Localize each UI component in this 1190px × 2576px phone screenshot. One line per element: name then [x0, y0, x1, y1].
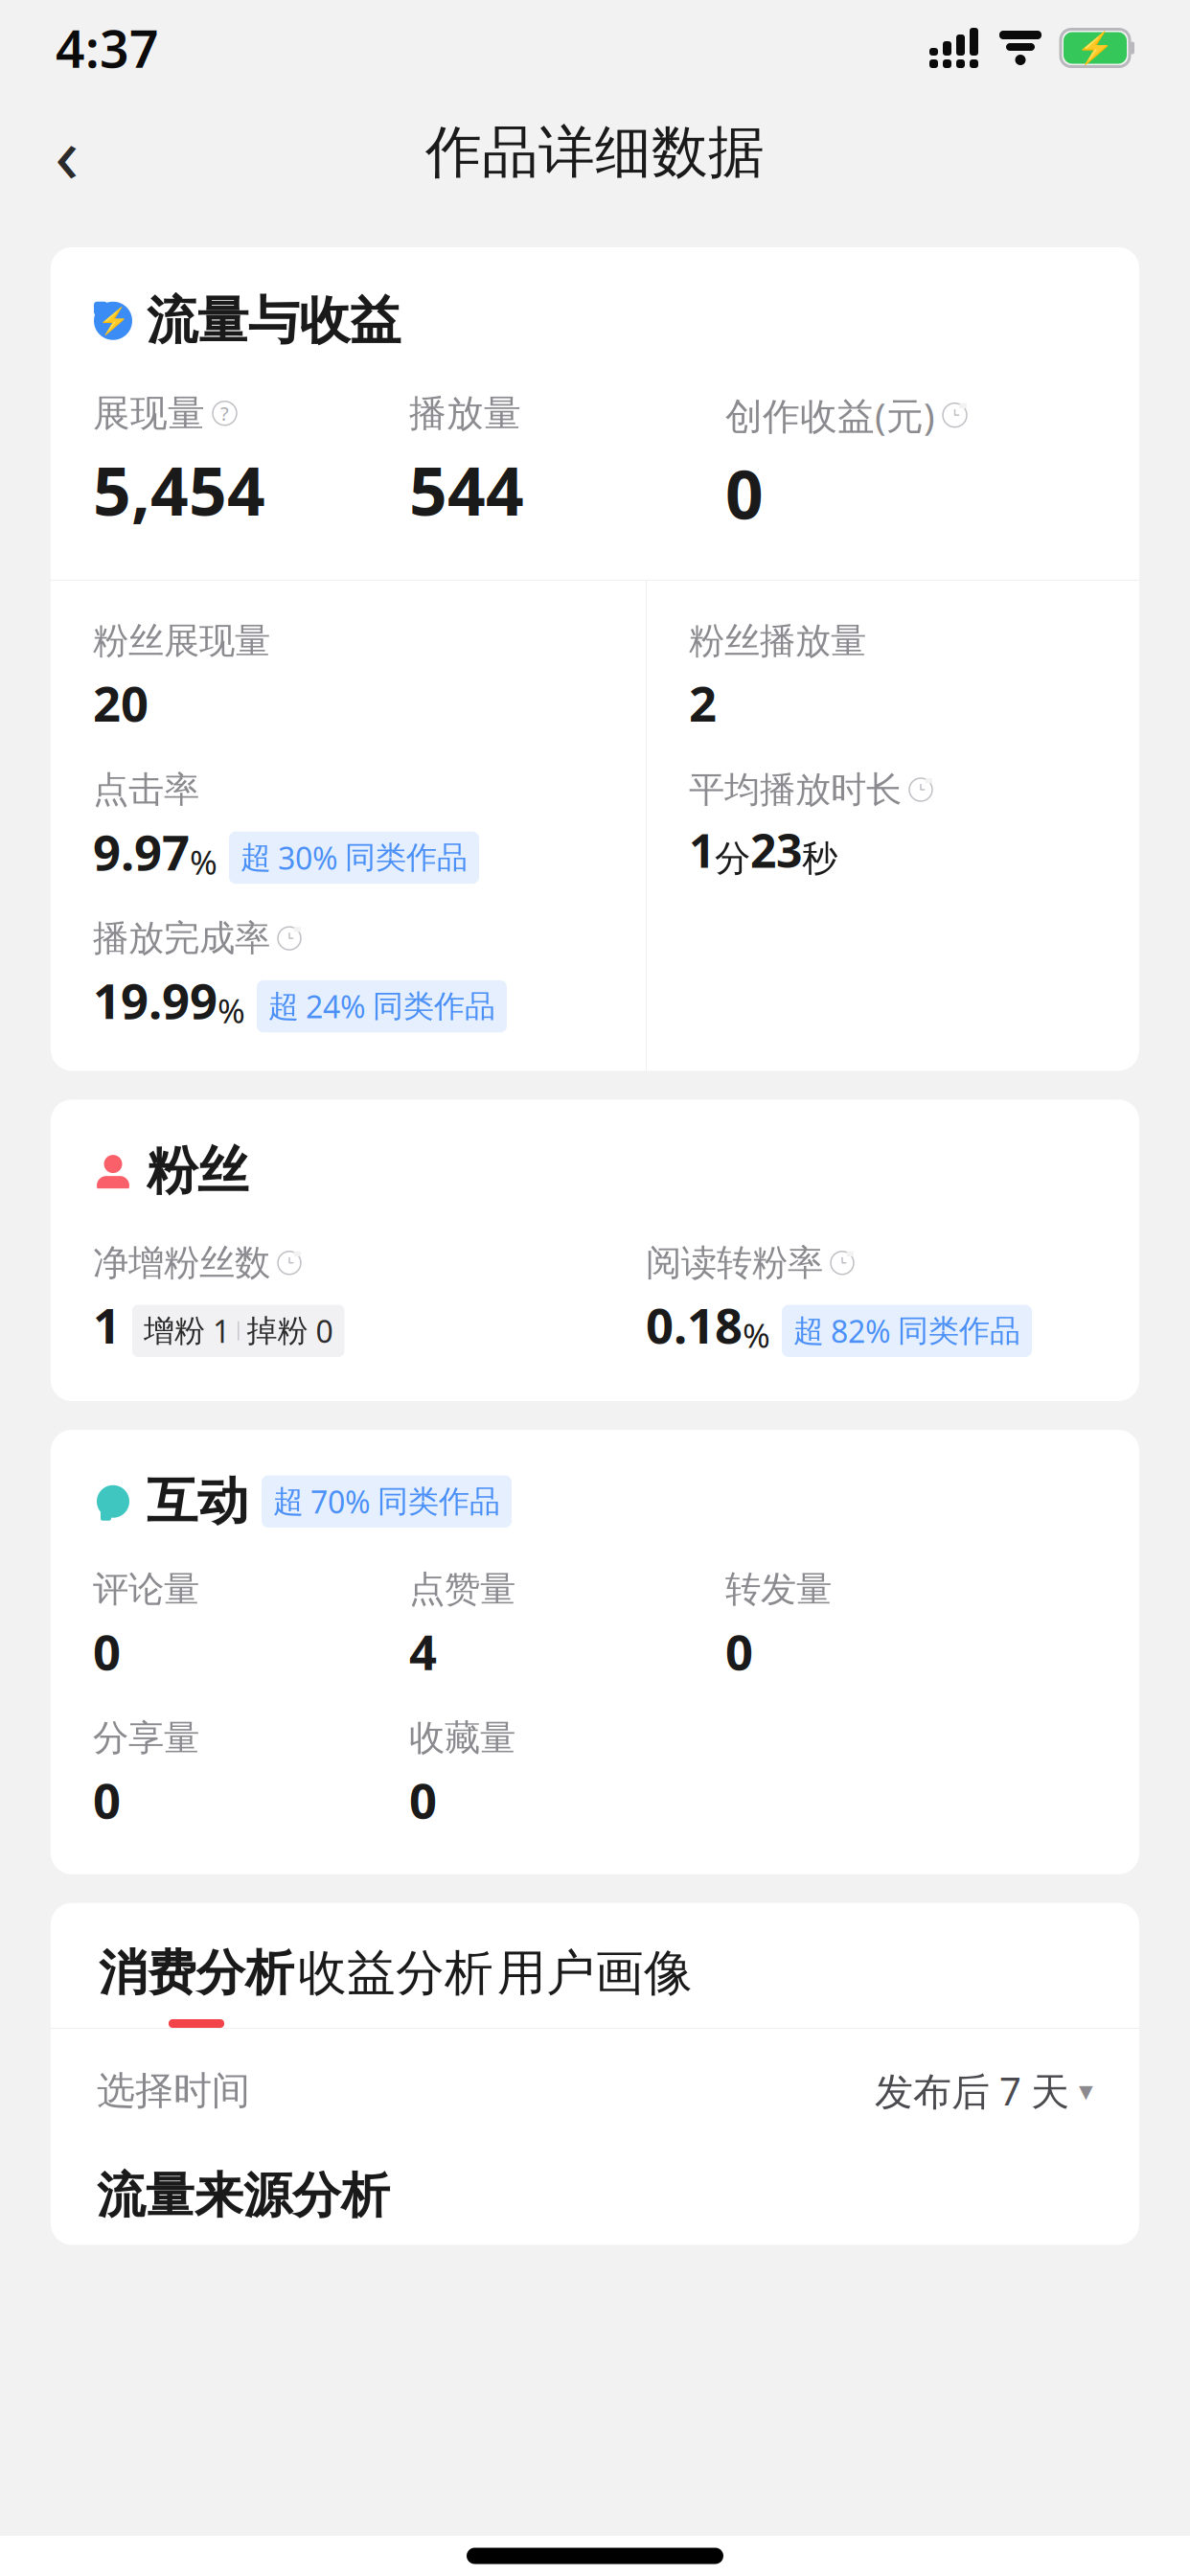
- staticText: 5,454: [93, 446, 265, 534]
- staticText: 0: [316, 1311, 333, 1351]
- staticText: 1: [213, 1311, 230, 1351]
- staticText: 0: [93, 1768, 121, 1832]
- staticText: 4:37: [56, 14, 159, 82]
- staticText: ‹: [55, 100, 80, 205]
- staticText: 粉丝播放量: [689, 619, 866, 663]
- staticText: 净增粉丝数: [93, 1241, 270, 1285]
- staticText: 粉丝: [147, 1140, 248, 1203]
- staticText: 掉粉: [247, 1312, 308, 1350]
- staticText: 同类作品: [345, 839, 468, 876]
- staticText: 阅读转粉率: [646, 1241, 823, 1285]
- staticText: 544: [409, 446, 524, 534]
- staticText: 1: [93, 1293, 121, 1357]
- staticText: 同类作品: [378, 1483, 500, 1520]
- staticText: 选择时间: [97, 2067, 250, 2114]
- staticText: 超: [273, 1483, 304, 1520]
- staticText: 收益分析: [298, 1943, 493, 2003]
- staticText: 分享量: [93, 1716, 199, 1760]
- staticText: 1: [689, 819, 715, 880]
- staticText: 平均播放时长: [689, 768, 902, 812]
- button[interactable]: Back: [21, 106, 113, 198]
- staticText: 评论量: [93, 1567, 199, 1611]
- staticText: ▾: [1079, 2075, 1093, 2107]
- staticText: 0: [409, 1768, 437, 1832]
- staticText: 收藏量: [409, 1716, 515, 1760]
- staticText: 超: [793, 1312, 824, 1350]
- staticText: 19.99: [93, 968, 217, 1033]
- staticText: 70%: [310, 1481, 371, 1522]
- staticText: 创作收益(元): [725, 391, 935, 440]
- staticText: 2: [689, 671, 717, 735]
- staticText: 0: [725, 1619, 753, 1684]
- staticText: 转发量: [725, 1567, 832, 1611]
- button[interactable]: 收益分析: [296, 1903, 495, 2028]
- staticText: 9.97: [93, 819, 190, 884]
- staticText: 粉丝展现量: [93, 619, 270, 663]
- staticText: 展现量: [93, 391, 205, 436]
- staticText: 23: [750, 819, 802, 880]
- staticText: 流量与收益: [147, 289, 400, 352]
- staticText: 发布后 7 天: [875, 2065, 1069, 2116]
- staticText: 点击率: [93, 768, 199, 812]
- staticText: %: [743, 1313, 770, 1357]
- staticText: 0: [725, 449, 764, 538]
- staticText: 超: [240, 839, 271, 876]
- staticText: %: [190, 840, 217, 884]
- staticText: 分: [715, 836, 750, 880]
- staticText: 用户画像: [497, 1943, 693, 2003]
- staticText: %: [217, 988, 245, 1032]
- staticText: 0: [93, 1619, 121, 1684]
- staticText: 同类作品: [898, 1312, 1020, 1350]
- staticText: 流量来源分析: [97, 2166, 390, 2226]
- staticText: 播放量: [409, 391, 521, 436]
- staticText: 4: [409, 1619, 437, 1684]
- staticText: 20: [93, 671, 149, 735]
- staticText: 点赞量: [409, 1567, 515, 1611]
- staticText: 0.18: [646, 1293, 743, 1357]
- button[interactable]: 用户画像: [495, 1903, 695, 2028]
- staticText: ?: [220, 401, 229, 426]
- button[interactable]: 发布后 7 天: [875, 2065, 1093, 2116]
- button[interactable]: 消费分析: [97, 1903, 296, 2028]
- staticText: 30%: [278, 837, 338, 878]
- staticText: 超: [268, 987, 299, 1025]
- staticText: 增粉: [144, 1312, 205, 1350]
- staticText: 秒: [802, 836, 837, 880]
- staticText: 同类作品: [373, 987, 495, 1025]
- staticText: 播放完成率: [93, 916, 270, 960]
- staticText: 互动: [147, 1470, 248, 1533]
- staticText: ⚡: [97, 306, 129, 335]
- staticText: 消费分析: [99, 1943, 294, 2003]
- staticText: 82%: [831, 1311, 891, 1351]
- staticText: ⚡: [1076, 30, 1114, 65]
- staticText: 24%: [306, 986, 366, 1027]
- staticText: 作品详细数据: [425, 118, 765, 187]
